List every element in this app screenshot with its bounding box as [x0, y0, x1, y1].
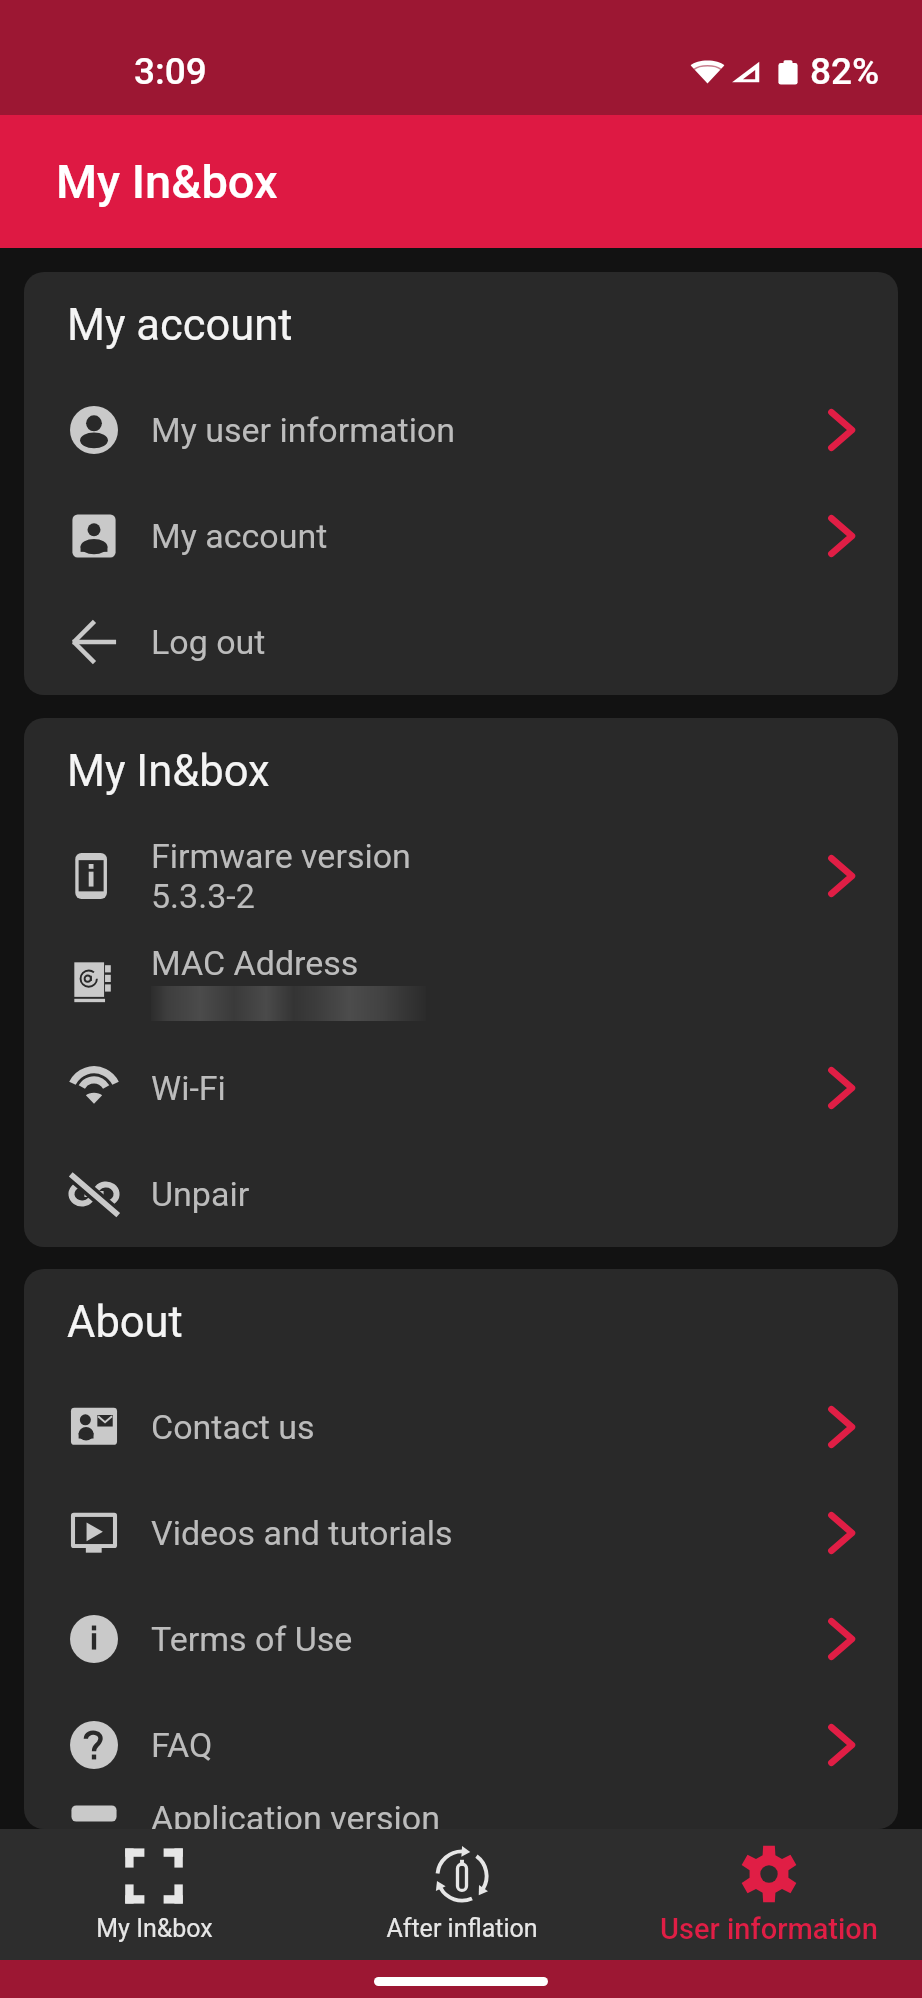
staticText: After inflation	[386, 1914, 538, 1943]
button[interactable]: Firmware version	[24, 823, 898, 929]
staticText: Terms of Use	[151, 1619, 353, 1659]
staticText: My In&box	[67, 746, 270, 797]
button[interactable]: FAQ	[24, 1692, 898, 1798]
staticText: MAC Address	[151, 943, 359, 983]
staticText: Log out	[151, 622, 266, 662]
staticText: About	[67, 1297, 183, 1348]
button[interactable]: Unpair	[24, 1141, 898, 1247]
button[interactable]: Wi-Fi	[24, 1035, 898, 1141]
staticText: My In&box	[96, 1914, 213, 1943]
button[interactable]: My user information	[24, 377, 898, 483]
staticText: Wi-Fi	[151, 1068, 226, 1108]
staticText: User information	[660, 1912, 878, 1946]
button[interactable]: User information	[615, 1829, 922, 1960]
button[interactable]: Log out	[24, 589, 898, 695]
staticText: Application version	[151, 1798, 440, 1829]
button[interactable]: Videos and tutorials	[24, 1480, 898, 1586]
button[interactable]: Terms of Use	[24, 1586, 898, 1692]
staticText: Unpair	[151, 1174, 250, 1214]
staticText: Firmware version	[151, 836, 411, 876]
staticText: FAQ	[151, 1725, 213, 1765]
button[interactable]: MAC Address	[24, 929, 898, 1035]
staticText: My In&box	[56, 154, 278, 209]
staticText: My account	[151, 516, 328, 556]
button[interactable]: Application version	[24, 1798, 898, 1829]
button[interactable]: My account	[24, 483, 898, 589]
button[interactable]: My In&box	[0, 1829, 308, 1960]
button[interactable]: After inflation	[308, 1829, 615, 1960]
staticText: 3:09	[134, 50, 207, 93]
staticText: Contact us	[151, 1407, 315, 1447]
staticText: 5.3.3-2	[151, 876, 255, 916]
staticText: 82%	[810, 50, 880, 93]
staticText: My account	[67, 300, 293, 351]
staticText: My user information	[151, 410, 456, 450]
staticText: Videos and tutorials	[151, 1513, 453, 1553]
button[interactable]: Contact us	[24, 1374, 898, 1480]
